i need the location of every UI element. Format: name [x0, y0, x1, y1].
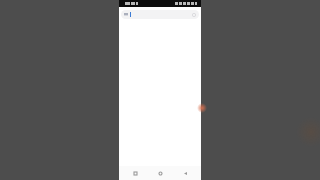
button[interactable]: Home	[151, 166, 169, 180]
other: Voice search	[192, 13, 196, 17]
button[interactable]: Back	[176, 166, 194, 180]
button[interactable]: Voice search	[121, 10, 199, 19]
button[interactable]: Recent apps	[126, 166, 144, 180]
